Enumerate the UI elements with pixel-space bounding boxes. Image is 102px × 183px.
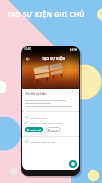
button[interactable]: Kết thúc 12:00 · Nhắc 15 phút [22,121,79,124]
button[interactable]: Thêm địa điểm sự kiện [22,140,79,143]
staticText: Chi tiết sự kiện [25,92,47,96]
button[interactable]: Sáng nay 10:00 [22,116,79,119]
staticText: Lặp lại [51,128,59,131]
staticText: Sáng nay 10:00 [30,116,47,119]
button[interactable]: Save event [69,160,77,168]
staticText: Kết thúc 12:00 · Nhắc 15 phút [30,121,63,124]
staticText: Thêm địa điểm sự kiện [30,140,56,143]
staticText: TẠO SỰ KIỆN GHI CHÚ [7,10,85,19]
button[interactable]: Nhắc nhở [25,127,43,132]
staticText: Nhắc nhở [30,128,41,131]
staticText: 10:40 [24,47,31,51]
button[interactable]: Lặp lại [46,127,61,132]
button[interactable]: Close [24,55,31,62]
staticText: TẠO SỰ KIỆN [42,56,65,61]
